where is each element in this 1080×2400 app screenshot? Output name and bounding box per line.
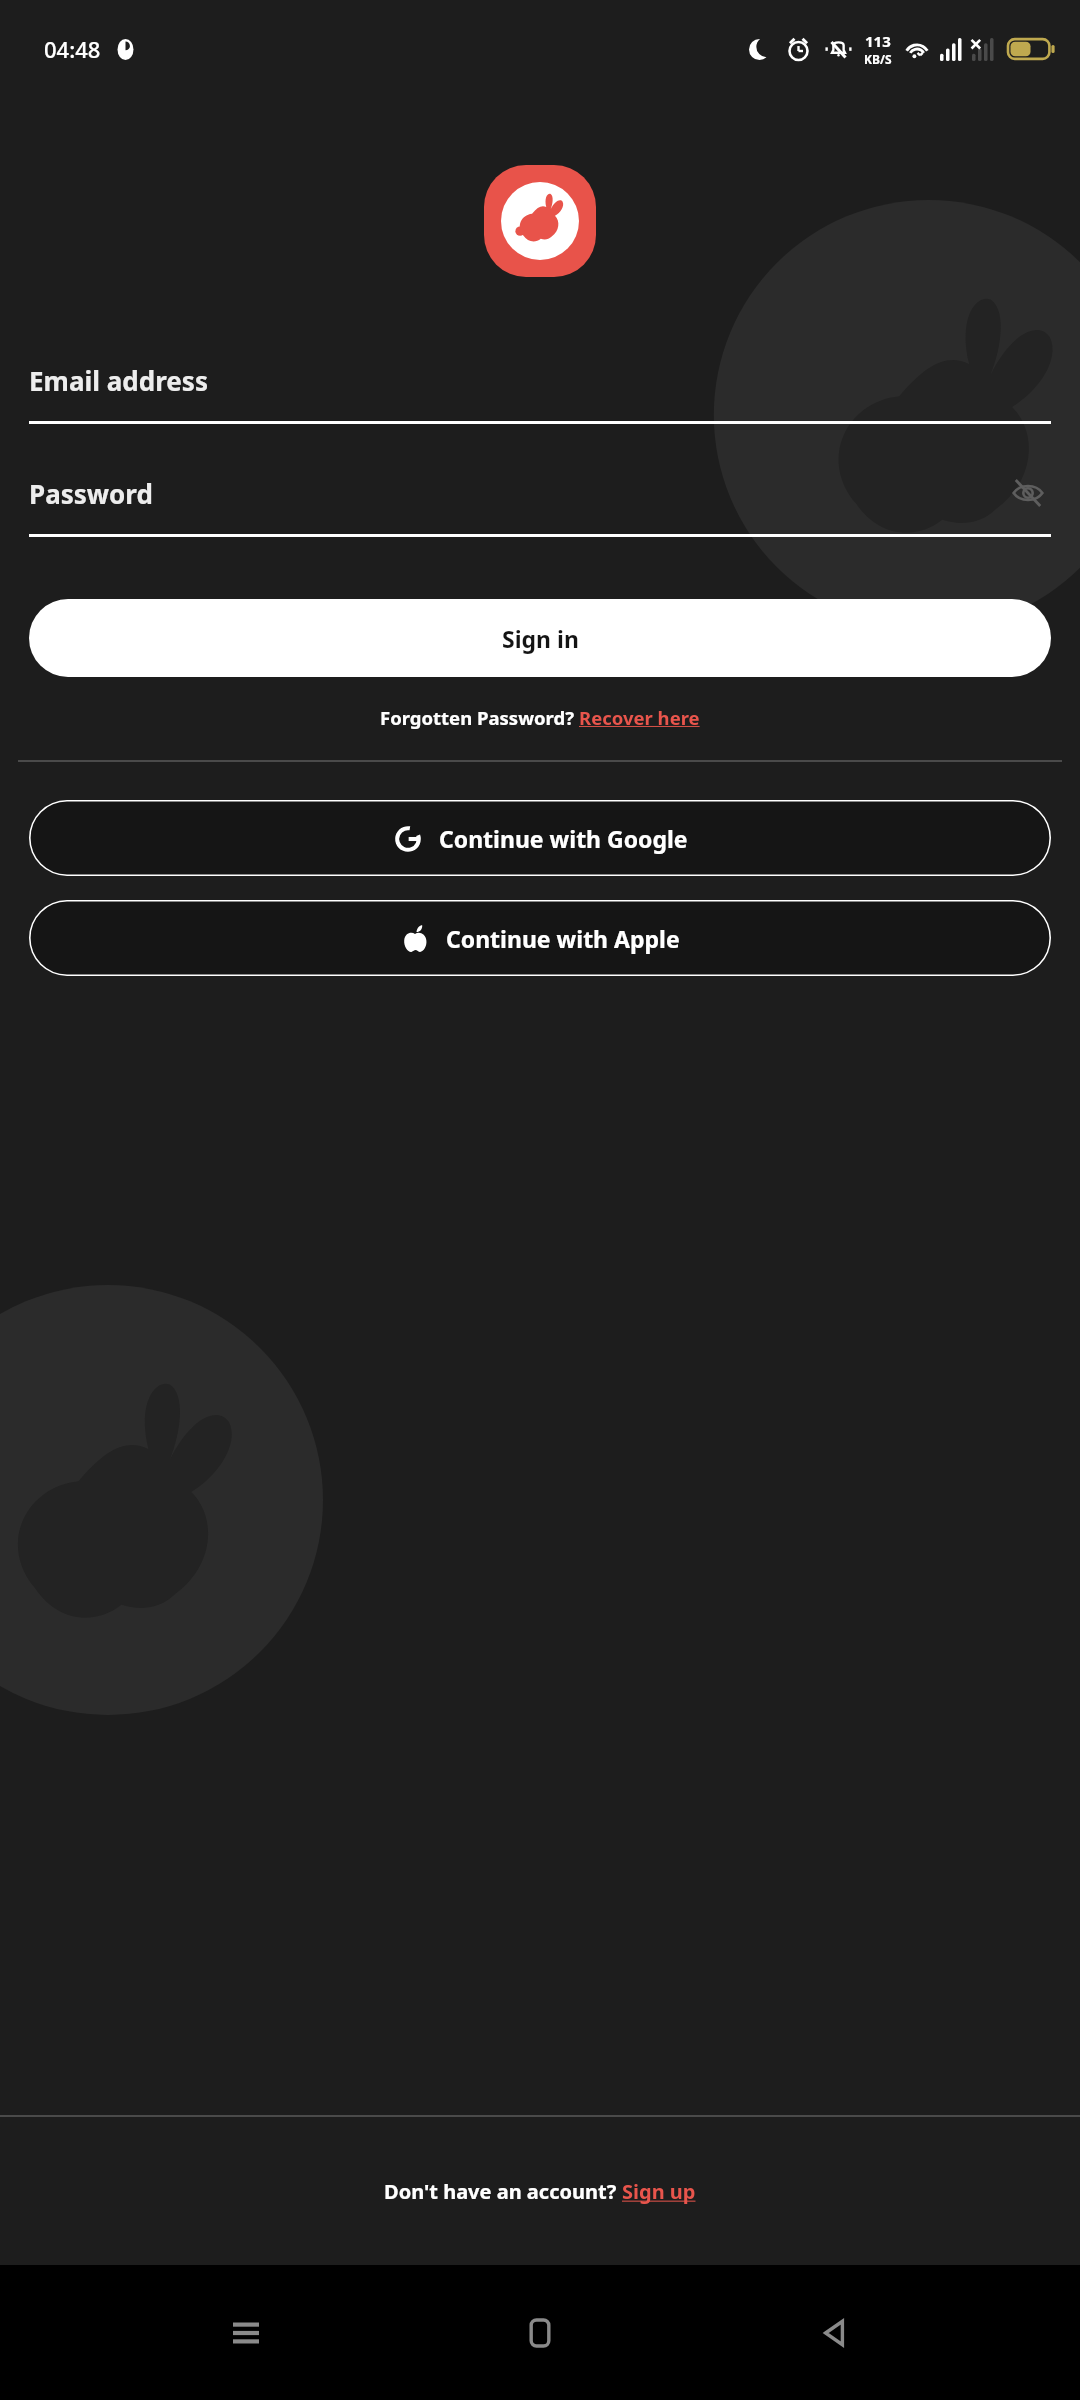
staticText: Don't have an account? bbox=[384, 2178, 622, 2205]
button[interactable]: Home bbox=[492, 2285, 588, 2381]
button[interactable]: Back bbox=[786, 2285, 882, 2381]
staticText: KB/S bbox=[864, 51, 892, 67]
staticText: Password bbox=[29, 476, 153, 511]
staticText: Sign up bbox=[622, 2178, 696, 2205]
button[interactable]: Continue with Google bbox=[29, 800, 1051, 876]
staticText: Recover here bbox=[579, 705, 700, 730]
staticText: 113 bbox=[865, 31, 891, 51]
button[interactable]: Show password bbox=[1005, 470, 1051, 516]
staticText: 04:48 bbox=[44, 34, 101, 64]
button[interactable]: Recover here bbox=[579, 705, 700, 730]
button[interactable]: Continue with Apple bbox=[29, 900, 1051, 976]
staticText: Sign in bbox=[502, 623, 579, 654]
button[interactable]: Recent apps bbox=[198, 2285, 294, 2381]
staticText: Continue with Google bbox=[439, 823, 688, 854]
button[interactable]: Sign up bbox=[622, 2178, 696, 2205]
button[interactable]: Sign in bbox=[29, 599, 1051, 677]
staticText: Continue with Apple bbox=[446, 923, 680, 954]
button[interactable]: Email address bbox=[29, 351, 1051, 424]
button[interactable]: Password bbox=[29, 464, 1051, 537]
staticText: Forgotten Password? bbox=[380, 705, 579, 730]
staticText: Email address bbox=[29, 363, 208, 398]
